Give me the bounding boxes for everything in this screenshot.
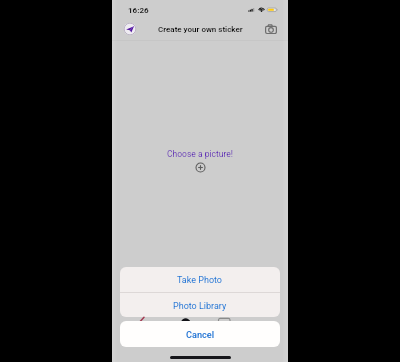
- staticText: 16:26: [128, 6, 149, 15]
- button[interactable]: Camera: [264, 22, 278, 36]
- button[interactable]: Add picture: [194, 161, 207, 174]
- button[interactable]: Photo Library: [120, 293, 280, 317]
- staticText: Choose a picture!: [167, 149, 233, 159]
- button[interactable]: Cancel: [120, 321, 280, 347]
- button[interactable]: Back: [123, 22, 137, 36]
- button[interactable]: Take Photo: [120, 267, 280, 292]
- staticText: Take Photo: [177, 275, 223, 286]
- staticText: Cancel: [186, 329, 215, 340]
- staticText: Photo Library: [173, 301, 227, 312]
- staticText: Create your own sticker: [158, 25, 243, 34]
